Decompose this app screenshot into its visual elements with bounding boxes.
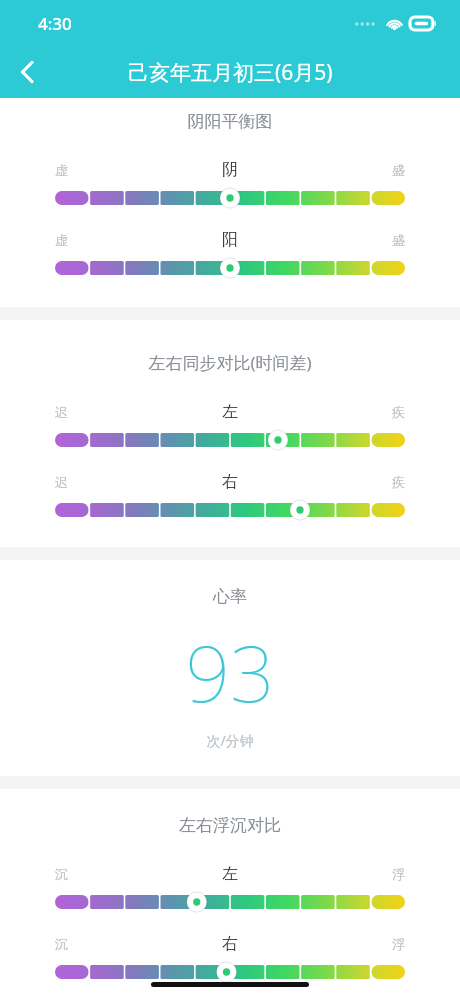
- staticText: 疾: [392, 404, 405, 420]
- staticText: 虚: [55, 162, 68, 178]
- staticText: 沉: [55, 936, 68, 952]
- staticText: 左右同步对比(时间差): [0, 351, 460, 374]
- staticText: 盛: [392, 232, 405, 248]
- staticText: 右: [222, 472, 238, 492]
- staticText: 阴: [222, 160, 238, 180]
- staticText: 左: [222, 402, 238, 422]
- staticText: 迟: [55, 474, 68, 490]
- staticText: 次/分钟: [0, 731, 460, 750]
- staticText: 阴阳平衡图: [0, 111, 460, 132]
- staticText: 4:30: [38, 12, 72, 35]
- staticText: 阳: [222, 230, 238, 250]
- staticText: 虚: [55, 232, 68, 248]
- staticText: 93: [0, 619, 460, 725]
- staticText: 左右浮沉对比: [0, 815, 460, 836]
- button[interactable]: Back: [0, 46, 54, 98]
- staticText: 沉: [55, 866, 68, 882]
- staticText: 盛: [392, 162, 405, 178]
- staticText: 迟: [55, 404, 68, 420]
- staticText: 右: [222, 934, 238, 954]
- staticText: 心率: [0, 586, 460, 607]
- staticText: 疾: [392, 474, 405, 490]
- staticText: 浮: [392, 936, 405, 952]
- staticText: 浮: [392, 866, 405, 882]
- staticText: 左: [222, 864, 238, 884]
- staticText: 己亥年五月初三(6月5): [128, 58, 333, 87]
